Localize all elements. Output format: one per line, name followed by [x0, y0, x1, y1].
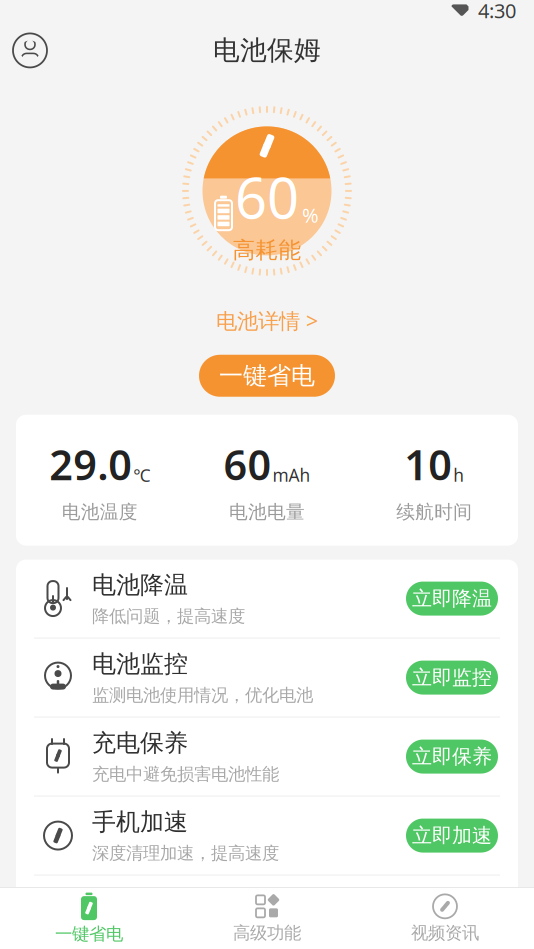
staticText: 60 [235, 160, 299, 234]
staticText: 高级功能 [233, 922, 301, 944]
staticText: 降低问题，提高速度 [92, 606, 245, 627]
staticText: 立即降温 [412, 586, 492, 611]
staticText: h [453, 464, 464, 487]
button[interactable]: 账户 [8, 28, 52, 72]
staticText: % [302, 202, 319, 228]
staticText: 深度清理 [92, 886, 188, 916]
staticText: 续航时间 [396, 501, 472, 523]
staticText: 电池保姆 [213, 34, 321, 67]
button[interactable]: 高级功能 [178, 888, 356, 949]
staticText: 电池温度 [62, 501, 138, 523]
staticText: 彻底清理，提高性能 [92, 922, 245, 943]
staticText: 监测电池使用情况，优化电池 [92, 685, 313, 706]
button[interactable]: 立即监控 [406, 661, 498, 695]
staticText: 深度清理加速，提高速度 [92, 843, 279, 864]
staticText: 4:30 [478, 0, 516, 24]
staticText: 60 [223, 437, 271, 492]
button[interactable]: 立即加速 [406, 819, 498, 853]
button[interactable]: 一键省电 [0, 888, 178, 949]
button[interactable]: 电池详情 > [206, 300, 328, 341]
staticText: mAh [272, 464, 310, 487]
staticText: 29.0 [49, 437, 132, 492]
button[interactable]: 立即清理 [406, 898, 498, 932]
staticText: 视频资讯 [411, 922, 479, 944]
staticText: 立即保养 [412, 744, 492, 769]
staticText: 手机加速 [92, 807, 188, 837]
button[interactable]: 立即降温 [406, 582, 498, 616]
staticText: 立即监控 [412, 665, 492, 690]
staticText: 立即清理 [412, 902, 492, 927]
staticText: 充电中避免损害电池性能 [92, 764, 279, 785]
staticText: 一键省电 [55, 923, 123, 945]
staticText: 电池电量 [229, 501, 305, 523]
button[interactable]: 视频资讯 [356, 888, 534, 949]
staticText: 一键省电 [219, 361, 315, 390]
staticText: 立即加速 [412, 823, 492, 848]
staticText: 充电保养 [92, 728, 188, 758]
button[interactable]: 立即保养 [406, 740, 498, 774]
staticText: 电池监控 [92, 649, 188, 679]
staticText: 10 [404, 437, 452, 492]
staticText: ℃ [133, 464, 150, 487]
button[interactable]: 一键省电 [199, 355, 335, 397]
staticText: 高耗能 [232, 236, 301, 264]
staticText: 电池详情 > [216, 306, 318, 335]
staticText: 电池降温 [92, 570, 188, 600]
